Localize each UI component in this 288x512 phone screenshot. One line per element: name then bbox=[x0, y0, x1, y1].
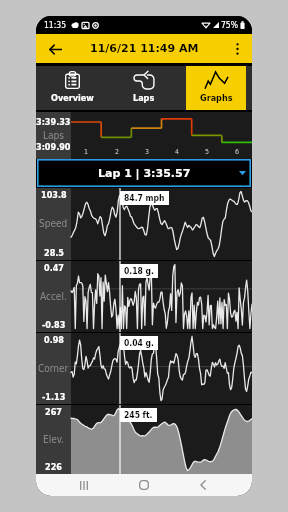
staticText: Lap 1 | 3:35.57 bbox=[98, 167, 191, 180]
staticText: 0.04 g. bbox=[124, 338, 154, 348]
staticText: 2 bbox=[115, 148, 120, 156]
button[interactable]: Graphs bbox=[186, 66, 246, 110]
staticText: Laps bbox=[43, 130, 64, 142]
staticText: 267 bbox=[45, 407, 62, 417]
staticText: 226 bbox=[45, 462, 62, 472]
staticText: -0.83 bbox=[42, 320, 66, 330]
staticText: 0.47 bbox=[44, 263, 64, 273]
staticText: 6 bbox=[235, 148, 240, 156]
staticText: 3:39.33 bbox=[36, 117, 71, 127]
staticText: Corner bbox=[38, 363, 69, 375]
staticText: 84.7 mph bbox=[124, 193, 165, 203]
staticText: 103.8 bbox=[41, 190, 67, 200]
staticText: Laps bbox=[133, 93, 155, 103]
button[interactable]: Laps bbox=[114, 66, 174, 110]
staticText: Speed bbox=[39, 218, 68, 230]
staticText: 28.5 bbox=[44, 248, 64, 258]
staticText: 0.18 g. bbox=[124, 266, 154, 276]
button[interactable]: Back bbox=[193, 475, 213, 495]
staticText: 3:09.90 bbox=[36, 142, 71, 152]
button[interactable]: Recent apps bbox=[74, 475, 94, 495]
staticText: Accel. bbox=[40, 291, 67, 303]
staticText: Elev. bbox=[43, 434, 65, 446]
staticText: 4 bbox=[175, 148, 180, 156]
staticText: 0.98 bbox=[44, 335, 64, 345]
staticText: 11:35 bbox=[44, 20, 67, 30]
staticText: -1.13 bbox=[42, 392, 66, 402]
staticText: Overview bbox=[51, 93, 94, 103]
button[interactable]: Back bbox=[45, 39, 65, 59]
staticText: 1 bbox=[84, 148, 89, 156]
staticText: 3 bbox=[145, 148, 150, 156]
button[interactable]: More options bbox=[227, 39, 247, 59]
staticText: Graphs bbox=[200, 93, 233, 103]
button[interactable]: Home bbox=[134, 475, 154, 495]
button[interactable]: Lap 1 | 3:35.57 bbox=[37, 159, 251, 187]
staticText: 11/6/21 11:49 AM bbox=[90, 42, 199, 55]
staticText: 75% bbox=[221, 20, 238, 30]
button[interactable]: Overview bbox=[42, 66, 102, 110]
staticText: 245 ft. bbox=[124, 410, 153, 420]
staticText: 5 bbox=[205, 148, 210, 156]
